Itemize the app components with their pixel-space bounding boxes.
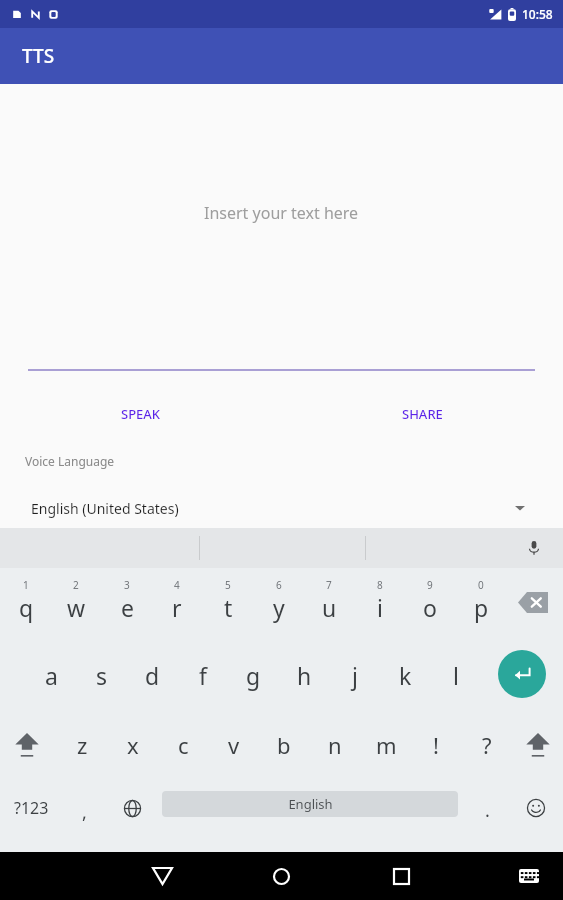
staticText: y xyxy=(273,592,285,623)
staticText: z xyxy=(77,730,88,760)
staticText: 2 xyxy=(73,578,79,592)
staticText: ?123 xyxy=(14,797,49,819)
button[interactable]: SHARE xyxy=(281,397,563,431)
button[interactable]: Shift xyxy=(3,712,51,778)
staticText: w xyxy=(67,592,86,623)
staticText: g xyxy=(246,660,261,691)
staticText: v xyxy=(228,730,240,760)
button[interactable]: h xyxy=(279,640,329,708)
staticText: m xyxy=(376,730,397,760)
button[interactable]: Home xyxy=(258,852,304,900)
staticText: Voice Language xyxy=(25,453,115,469)
button[interactable]: 0 xyxy=(456,568,506,636)
staticText: 0 xyxy=(478,578,484,592)
staticText: English xyxy=(288,795,333,813)
button[interactable]: ? xyxy=(462,712,512,778)
staticText: 5 xyxy=(225,578,231,592)
staticText: 6 xyxy=(276,578,282,592)
button[interactable]: English (United States) xyxy=(0,491,563,525)
staticText: 4 xyxy=(174,578,180,592)
staticText: f xyxy=(199,660,207,691)
button[interactable]: v xyxy=(209,712,259,778)
button[interactable]: f xyxy=(178,640,228,708)
staticText: 9 xyxy=(427,578,433,592)
staticText: n xyxy=(328,730,342,760)
button[interactable]: Enter xyxy=(498,650,546,698)
staticText: 1 xyxy=(23,578,29,592)
button[interactable]: l xyxy=(431,640,481,708)
staticText: c xyxy=(178,730,189,760)
staticText: TTS xyxy=(22,43,55,69)
button[interactable]: SPEAK xyxy=(0,397,281,431)
button[interactable]: 2 xyxy=(51,568,101,636)
staticText: s xyxy=(96,660,108,691)
staticText: ? xyxy=(482,730,492,760)
staticText: p xyxy=(474,592,489,623)
staticText: , xyxy=(82,800,87,825)
staticText: x xyxy=(127,730,139,760)
staticText: 3 xyxy=(124,578,130,592)
button[interactable]: Back xyxy=(139,852,185,900)
button[interactable]: Hide keyboard xyxy=(509,852,549,900)
staticText: 10:58 xyxy=(522,6,553,22)
button[interactable]: 5 xyxy=(203,568,253,636)
button[interactable]: 1 xyxy=(1,568,51,636)
staticText: Insert your text here xyxy=(204,202,359,224)
button[interactable]: ?123 xyxy=(2,780,60,836)
button[interactable]: Recent apps xyxy=(378,852,424,900)
button[interactable]: Shift xyxy=(514,712,562,778)
button[interactable]: b xyxy=(259,712,309,778)
staticText: . xyxy=(485,798,490,823)
button[interactable]: 4 xyxy=(152,568,202,636)
staticText: o xyxy=(423,592,437,623)
staticText: b xyxy=(277,730,291,760)
staticText: SHARE xyxy=(402,405,443,423)
staticText: SPEAK xyxy=(121,405,161,423)
button[interactable]: k xyxy=(380,640,430,708)
button[interactable]: . xyxy=(466,780,508,836)
staticText: d xyxy=(145,660,160,691)
button[interactable]: z xyxy=(57,712,107,778)
staticText: 7 xyxy=(326,578,332,592)
button[interactable]: Backspace xyxy=(508,582,558,622)
staticText: u xyxy=(322,592,337,623)
button[interactable]: Emoji xyxy=(512,780,560,836)
staticText: j xyxy=(352,660,358,691)
staticText: 8 xyxy=(377,578,383,592)
button[interactable]: ! xyxy=(411,712,461,778)
staticText: k xyxy=(399,660,412,691)
button[interactable]: d xyxy=(127,640,177,708)
button[interactable]: 9 xyxy=(405,568,455,636)
button[interactable]: English xyxy=(162,791,458,817)
button[interactable]: Insert your text here xyxy=(0,84,563,369)
button[interactable]: s xyxy=(77,640,127,708)
staticText: i xyxy=(377,592,383,623)
button[interactable]: Change language xyxy=(110,780,154,836)
staticText: ! xyxy=(433,730,439,760)
button[interactable]: n xyxy=(310,712,360,778)
button[interactable]: 6 xyxy=(254,568,304,636)
staticText: l xyxy=(453,660,459,691)
button[interactable]: 3 xyxy=(102,568,152,636)
button[interactable]: j xyxy=(330,640,380,708)
staticText: a xyxy=(45,660,58,691)
button[interactable]: 7 xyxy=(304,568,354,636)
button[interactable]: Voice input xyxy=(521,535,547,561)
button[interactable]: x xyxy=(108,712,158,778)
button[interactable]: c xyxy=(158,712,208,778)
staticText: q xyxy=(19,592,34,623)
button[interactable]: 8 xyxy=(355,568,405,636)
staticText: English (United States) xyxy=(31,499,179,518)
button[interactable]: a xyxy=(26,640,76,708)
staticText: r xyxy=(172,592,182,623)
staticText: e xyxy=(121,592,134,623)
staticText: t xyxy=(224,592,233,623)
button[interactable]: m xyxy=(361,712,411,778)
staticText: h xyxy=(297,660,312,691)
button[interactable]: g xyxy=(228,640,278,708)
button[interactable]: , xyxy=(62,780,106,836)
